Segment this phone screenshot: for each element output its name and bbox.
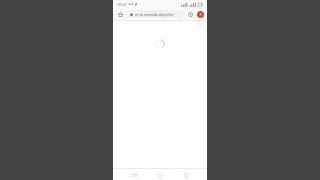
button[interactable]: Account <box>197 11 204 18</box>
button[interactable]: Home <box>116 10 125 19</box>
button[interactable]: Tabs <box>186 10 195 19</box>
button[interactable]: Back <box>181 170 191 180</box>
button[interactable]: Home <box>155 170 165 180</box>
button[interactable]: m.sb.news/abcd/profile/ <box>127 10 184 18</box>
staticText: 10:24 <box>117 2 126 7</box>
staticText: m.sb.news/abcd/profile/ <box>135 12 174 17</box>
button[interactable]: Recents <box>129 170 139 180</box>
